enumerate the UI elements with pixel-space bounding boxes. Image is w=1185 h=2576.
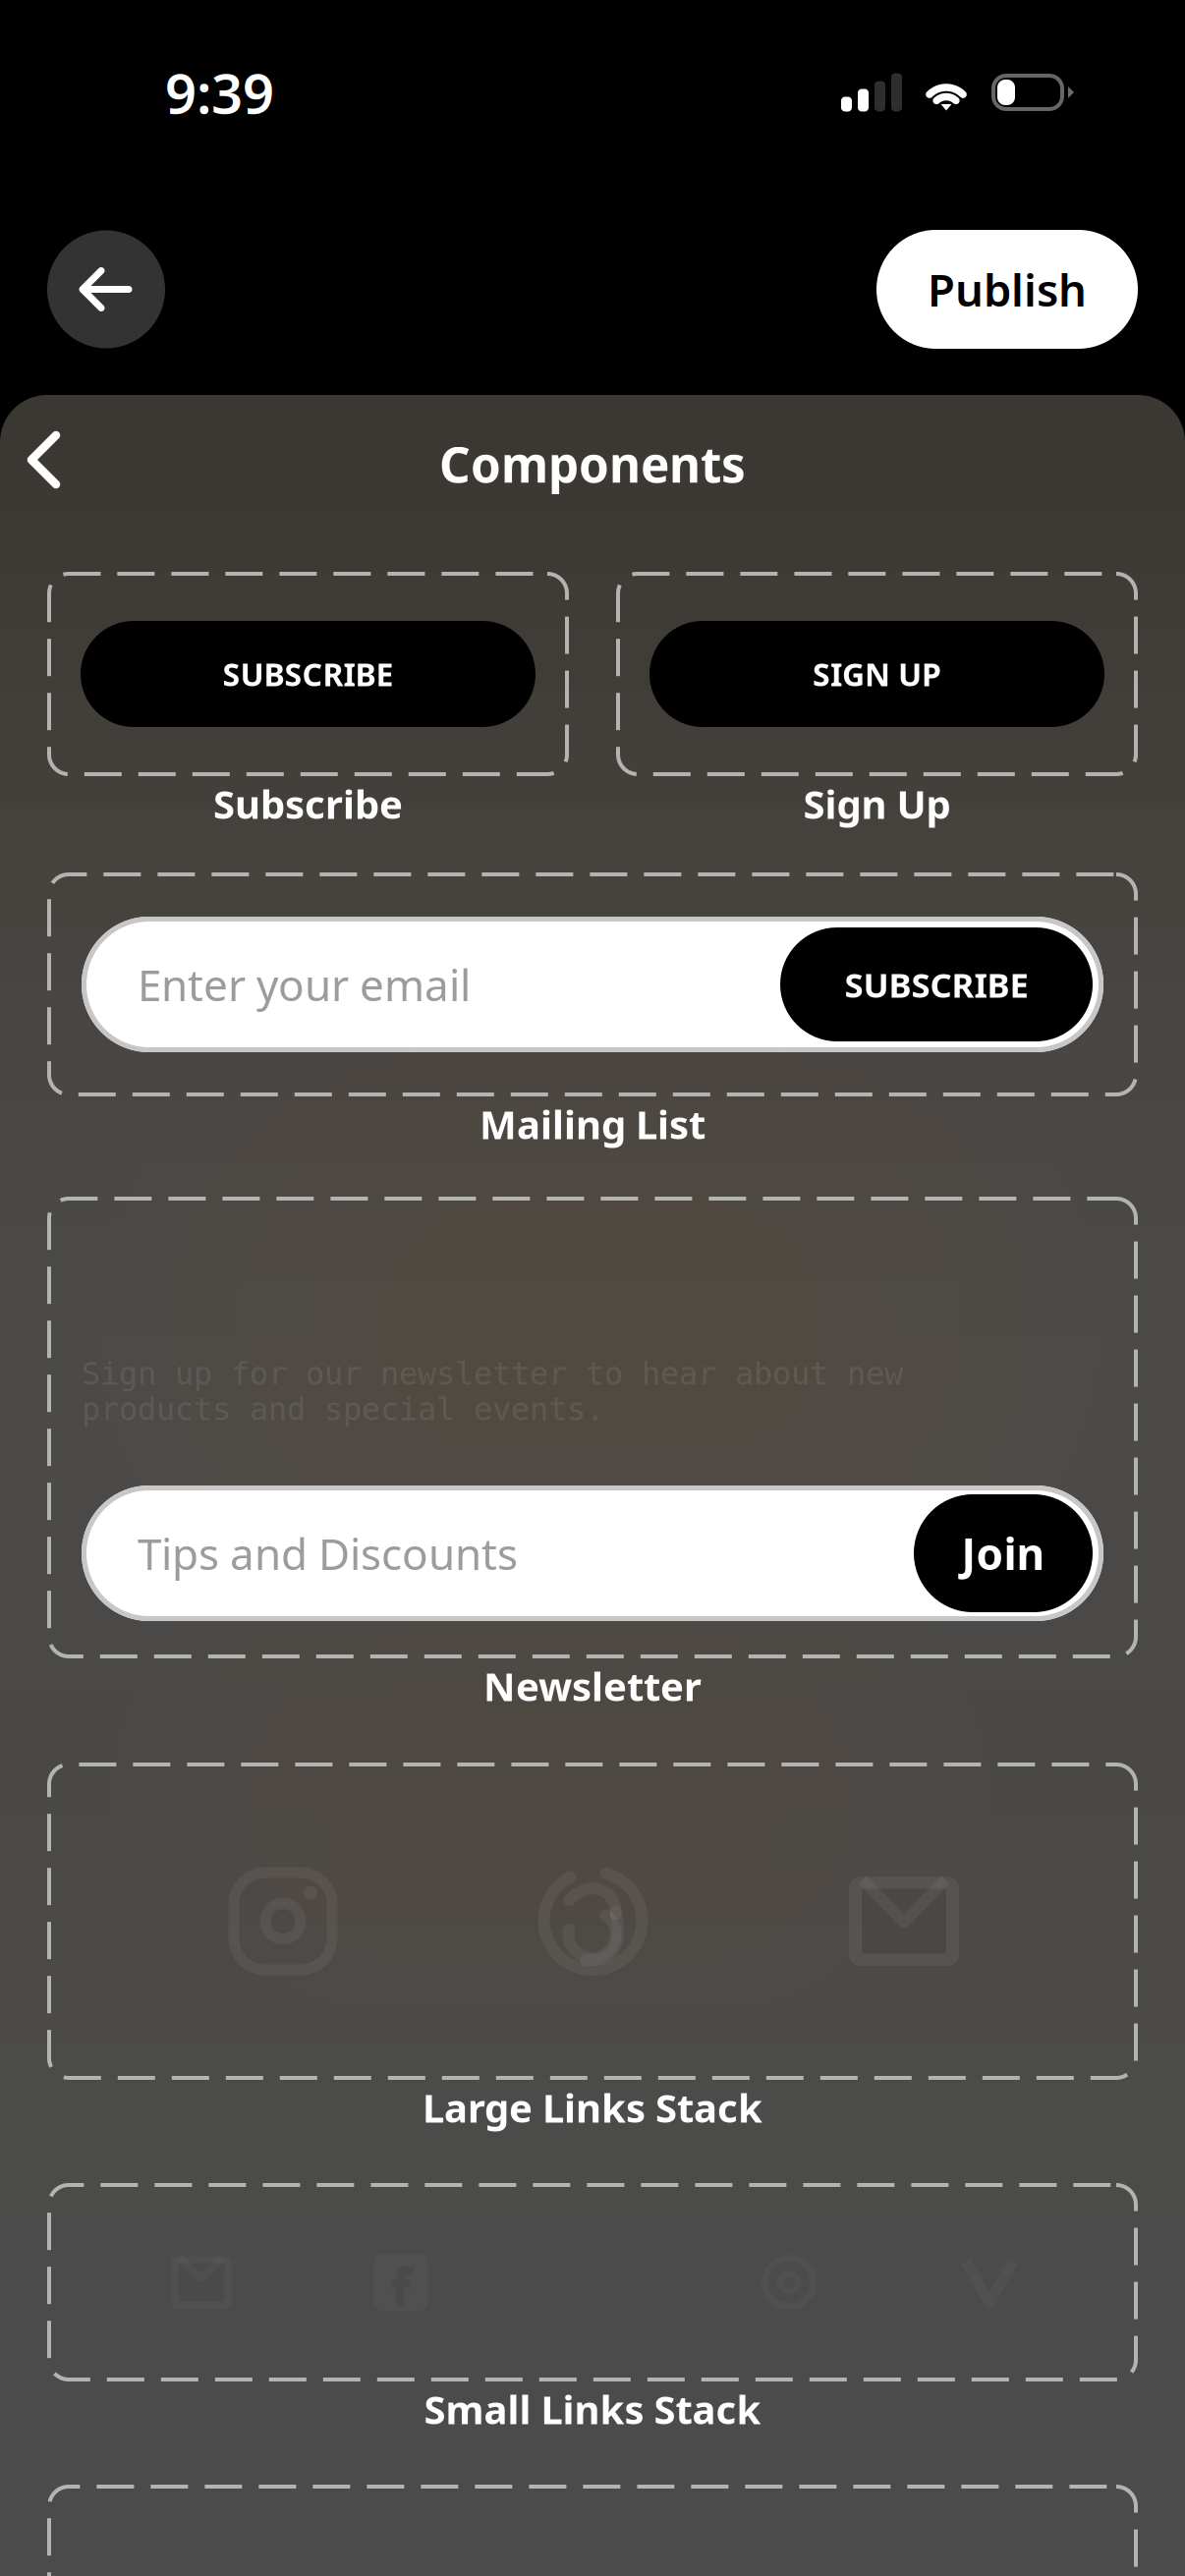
staticText: Newsletter xyxy=(483,1660,702,1712)
staticText: SUBSCRIBE xyxy=(845,962,1028,1007)
button[interactable]: Email xyxy=(171,2256,231,2308)
button[interactable]: Join xyxy=(914,1494,1093,1612)
staticText: Small Links Stack xyxy=(424,2383,761,2435)
staticText: Mailing List xyxy=(480,1098,705,1150)
staticText: SUBSCRIBE xyxy=(223,653,394,695)
staticText: Sign Up xyxy=(803,778,951,830)
button[interactable]: Email xyxy=(749,1823,1059,2019)
staticText: Tips and Discounts xyxy=(138,1525,518,1582)
staticText: Large Links Stack xyxy=(423,2081,762,2133)
button[interactable]: Back xyxy=(47,230,165,348)
staticText: Enter your email xyxy=(138,956,471,1013)
button[interactable]: SUBSCRIBE xyxy=(81,621,536,727)
button[interactable]: SIGN UP xyxy=(649,621,1104,727)
button[interactable]: Instagram xyxy=(128,1823,438,2019)
staticText: Sign up for our newsletter to hear about… xyxy=(82,1356,903,1427)
staticText: Subscribe xyxy=(213,778,403,830)
button[interactable]: Threads xyxy=(438,1823,749,2019)
staticText: SIGN UP xyxy=(813,653,941,695)
staticText: Join xyxy=(961,1525,1045,1582)
staticText: 9:39 xyxy=(165,56,274,129)
staticText: Publish xyxy=(928,260,1087,319)
button[interactable]: Publish xyxy=(876,230,1138,349)
button[interactable]: SUBSCRIBE xyxy=(780,927,1093,1041)
staticText: Components xyxy=(439,431,746,496)
button[interactable]: Back xyxy=(0,419,94,509)
